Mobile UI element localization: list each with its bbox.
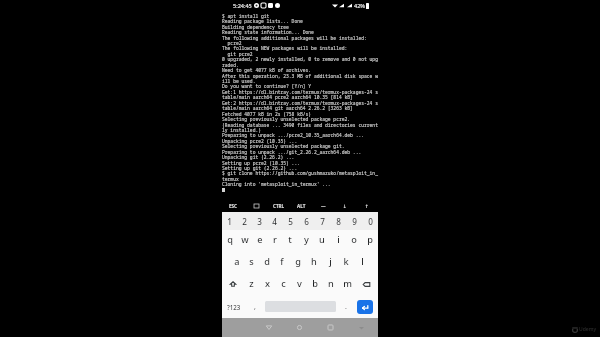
staticText: Preparing to unpack .../git_2.26.2_aarch… (222, 149, 362, 155)
button[interactable]: t (282, 230, 298, 251)
staticText: e (257, 233, 263, 246)
staticText: x (265, 277, 270, 290)
button[interactable]: y (298, 230, 314, 251)
staticText: (Reading database ... 3490 files and dir… (222, 122, 378, 128)
staticText: Get:1 https://dl.bintray.com/termux/term… (222, 89, 378, 95)
staticText: a (234, 255, 240, 268)
button[interactable]: p (362, 230, 378, 251)
button[interactable]: Backspace (355, 273, 378, 295)
button[interactable]: ↑ (356, 200, 378, 212)
button[interactable]: b (307, 273, 323, 295)
button[interactable]: h (306, 251, 322, 273)
staticText: The following additional packages will b… (222, 35, 367, 41)
button[interactable]: CTRL (268, 200, 290, 212)
staticText: r (273, 233, 277, 246)
button[interactable]: ?123 (222, 295, 245, 318)
staticText: 9 (352, 216, 357, 227)
staticText: w (241, 233, 249, 246)
staticText: Cloning into 'metasploit_in_termux' ... (222, 181, 331, 187)
staticText: 42% (354, 2, 365, 9)
button[interactable]: 6 (298, 212, 314, 230)
button[interactable]: Space (265, 295, 336, 318)
staticText: Building dependency tree (222, 24, 289, 30)
button[interactable]: 9 (346, 212, 362, 230)
staticText: o (351, 233, 357, 246)
button[interactable]: l (354, 251, 370, 273)
button[interactable]: 0 (362, 212, 378, 230)
button[interactable]: u (314, 230, 330, 251)
button[interactable]: d (259, 251, 274, 273)
button[interactable]: 1 (222, 212, 237, 230)
staticText: raded. (222, 62, 239, 68)
staticText: — (321, 203, 326, 209)
button[interactable]: s (244, 251, 259, 273)
button[interactable]: 2 (237, 212, 252, 230)
staticText: Preparing to unpack .../pcre2_10.35_aarc… (222, 132, 365, 138)
staticText: $ git clone https://github.com/gushmazuk… (222, 170, 378, 176)
staticText: Setting up git (2.26.2) ... (222, 165, 298, 171)
button[interactable]: Keyboard (245, 200, 268, 212)
button[interactable]: z (244, 273, 259, 295)
button[interactable]: Enter (355, 295, 378, 318)
button[interactable]: ALT (290, 200, 312, 212)
staticText: , (254, 302, 256, 312)
staticText: 0 (368, 216, 373, 227)
staticText: Get:2 https://dl.bintray.com/termux/term… (222, 100, 378, 106)
staticText: 6 (304, 216, 309, 227)
staticText: d (264, 255, 270, 268)
button[interactable]: e (252, 230, 267, 251)
staticText: table/main aarch64 pcre2 aarch64 10.35 [… (222, 94, 353, 100)
button[interactable]: Back (253, 318, 284, 337)
button[interactable]: ESC (222, 200, 245, 212)
button[interactable]: j (322, 251, 338, 273)
staticText: m (343, 277, 352, 290)
button[interactable]: c (275, 273, 291, 295)
button[interactable]: x (259, 273, 275, 295)
button[interactable]: ↓ (334, 200, 356, 212)
button[interactable]: 5 (282, 212, 298, 230)
staticText: j (329, 255, 332, 268)
staticText: i (337, 233, 340, 246)
staticText: ESC (229, 203, 238, 209)
button[interactable]: , (245, 295, 265, 318)
staticText: 3 (257, 216, 262, 227)
staticText: k (343, 255, 349, 268)
staticText: Need to get 4077 kB of archives. (222, 67, 312, 73)
button[interactable]: — (312, 200, 334, 212)
button[interactable]: i (330, 230, 346, 251)
button[interactable]: 8 (330, 212, 346, 230)
staticText: Udemy (579, 326, 597, 333)
staticText: ↓ (343, 204, 347, 209)
button[interactable]: 3 (252, 212, 267, 230)
button[interactable]: o (346, 230, 362, 251)
button[interactable]: a (229, 251, 244, 273)
staticText: 5:24:45 (233, 2, 252, 9)
staticText: h (311, 255, 317, 268)
button[interactable]: f (274, 251, 290, 273)
staticText: f (280, 255, 284, 268)
button[interactable]: . (336, 295, 355, 318)
button[interactable]: w (237, 230, 252, 251)
staticText: termux (222, 176, 239, 182)
staticText: ALT (297, 203, 306, 209)
staticText: c (281, 277, 286, 290)
button[interactable]: g (290, 251, 306, 273)
button[interactable]: m (339, 273, 355, 295)
button[interactable]: Shift (222, 273, 244, 295)
button[interactable]: Home (284, 318, 315, 337)
button[interactable]: k (338, 251, 354, 273)
button[interactable]: 7 (314, 212, 330, 230)
staticText: 4 (272, 216, 277, 227)
staticText: table/main aarch64 git aarch64 2.26.2 [3… (222, 105, 353, 111)
staticText: b (312, 277, 318, 290)
button[interactable]: v (291, 273, 307, 295)
button[interactable]: r (267, 230, 282, 251)
staticText: Selecting previously unselected package … (222, 116, 351, 122)
staticText: The following NEW packages will be insta… (222, 45, 348, 51)
button[interactable]: Recents (315, 318, 346, 337)
button[interactable]: q (222, 230, 237, 251)
button[interactable]: 4 (267, 212, 282, 230)
button[interactable]: n (323, 273, 339, 295)
staticText: Unpacking git (2.26.2) ... (222, 154, 295, 160)
